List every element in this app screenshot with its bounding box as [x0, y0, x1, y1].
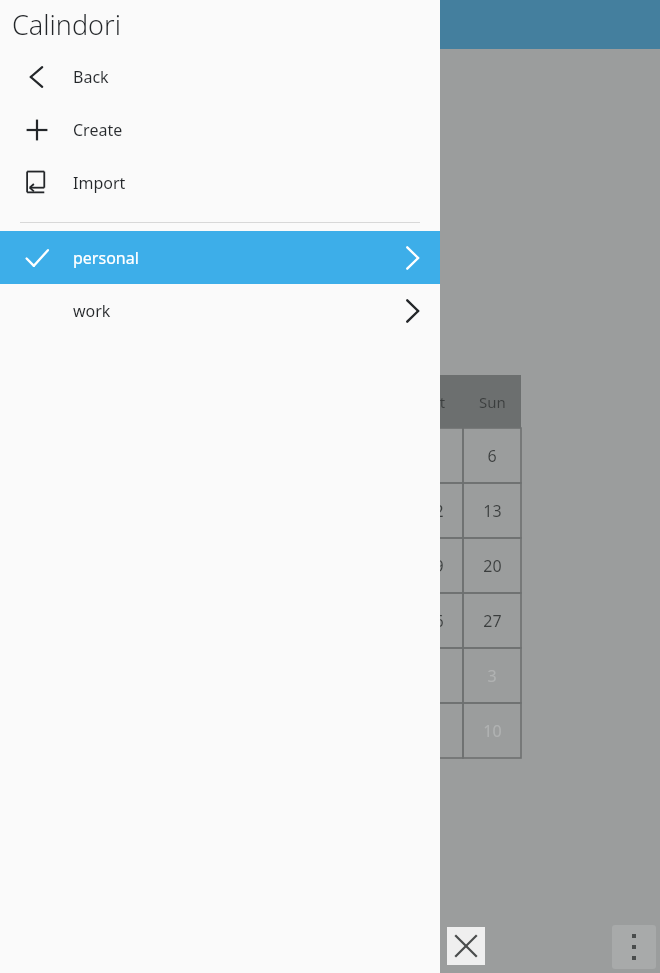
- staticText: 26: [425, 610, 444, 632]
- staticText: 13: [483, 500, 502, 522]
- staticText: 12: [425, 500, 444, 522]
- button[interactable]: 19: [405, 538, 463, 593]
- staticText: personal: [73, 247, 139, 269]
- staticText: 27: [483, 610, 502, 632]
- button[interactable]: Back: [0, 50, 440, 103]
- staticText: Calindori: [12, 6, 121, 43]
- staticText: Sun: [479, 392, 506, 412]
- button[interactable]: work: [0, 284, 440, 337]
- button[interactable]: 10: [463, 703, 521, 758]
- button[interactable]: 27: [463, 593, 521, 648]
- button[interactable]: 6: [463, 428, 521, 483]
- staticText: 20: [483, 555, 502, 577]
- staticText: 3: [487, 665, 497, 687]
- button[interactable]: personal: [0, 231, 440, 284]
- button[interactable]: Create: [0, 103, 440, 156]
- button[interactable]: 2: [405, 648, 463, 703]
- button[interactable]: 9: [405, 703, 463, 758]
- button[interactable]: More options: [612, 925, 656, 969]
- button[interactable]: 20: [463, 538, 521, 593]
- button[interactable]: 5: [405, 428, 463, 483]
- staticText: Sat: [423, 392, 446, 412]
- button[interactable]: 13: [463, 483, 521, 538]
- button[interactable]: Close: [447, 927, 485, 965]
- staticText: work: [73, 300, 111, 322]
- button[interactable]: 12: [405, 483, 463, 538]
- staticText: Back: [73, 66, 109, 88]
- staticText: 19: [425, 555, 444, 577]
- staticText: 6: [487, 445, 497, 467]
- staticText: Create: [73, 119, 123, 141]
- button[interactable]: Import: [0, 156, 440, 209]
- staticText: 10: [483, 720, 502, 742]
- button[interactable]: 26: [405, 593, 463, 648]
- staticText: Import: [73, 172, 126, 194]
- button[interactable]: 3: [463, 648, 521, 703]
